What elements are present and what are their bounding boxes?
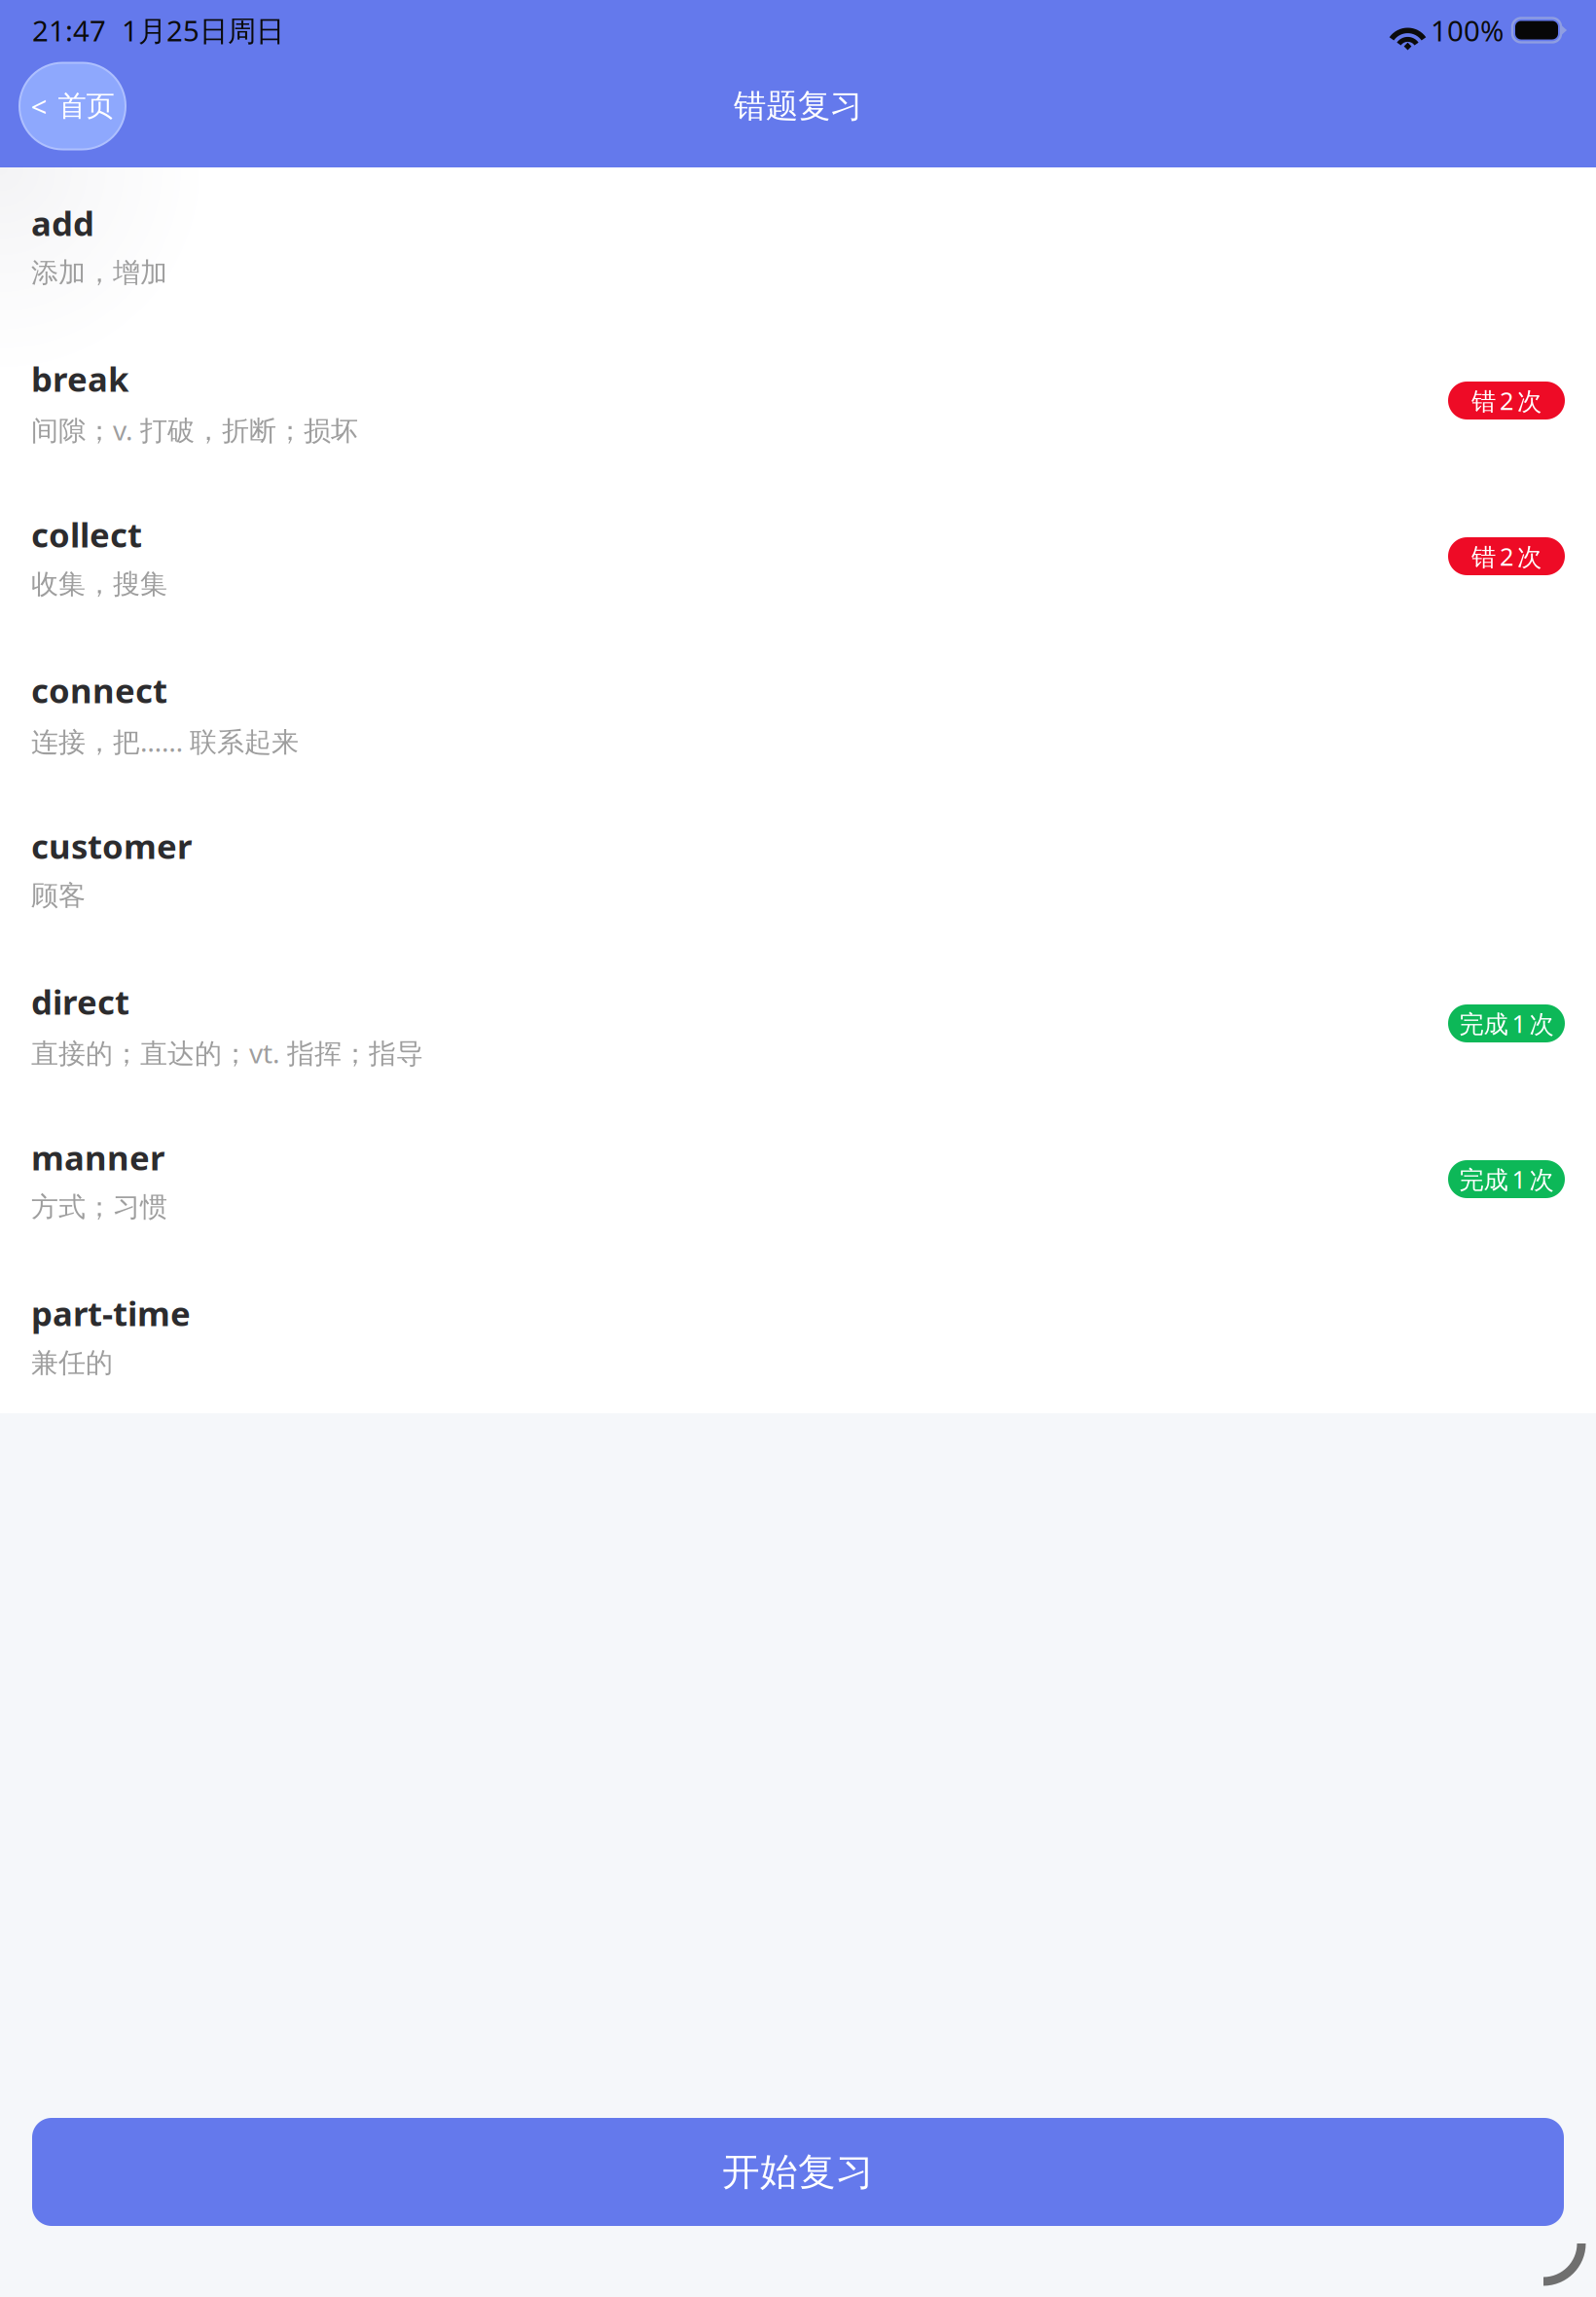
button[interactable]: customer: [0, 790, 1596, 946]
staticText: 完成 1 次: [1459, 1007, 1554, 1040]
staticText: 间隙；v. 打破，折断；损坏: [31, 412, 358, 448]
button[interactable]: break: [0, 323, 1596, 479]
staticText: 首页: [58, 89, 114, 124]
staticText: 顾客: [31, 879, 86, 912]
button[interactable]: part-time: [0, 1258, 1596, 1413]
staticText: 开始复习: [722, 2149, 874, 2195]
staticText: <: [31, 87, 47, 125]
staticText: add: [31, 201, 94, 245]
staticText: 连接，把…… 联系起来: [31, 723, 299, 759]
staticText: 100%: [1431, 11, 1504, 49]
staticText: direct: [31, 979, 129, 1024]
staticText: 添加，增加: [31, 256, 167, 289]
staticText: customer: [31, 823, 192, 868]
staticText: 方式；习惯: [31, 1190, 167, 1224]
staticText: 兼任的: [31, 1346, 113, 1380]
button[interactable]: direct: [0, 946, 1596, 1102]
button[interactable]: connect: [0, 635, 1596, 790]
button[interactable]: 开始复习: [32, 2118, 1564, 2226]
button[interactable]: manner: [0, 1102, 1596, 1258]
staticText: break: [31, 356, 128, 401]
staticText: connect: [31, 668, 167, 712]
staticText: 21:47 1月25日周日: [32, 11, 284, 49]
staticText: 错 2 次: [1471, 384, 1542, 417]
button[interactable]: 返回首页: [19, 63, 126, 149]
staticText: 错题复习: [734, 86, 862, 126]
staticText: manner: [31, 1135, 164, 1180]
staticText: 完成 1 次: [1459, 1163, 1554, 1196]
staticText: part-time: [31, 1291, 191, 1335]
staticText: 直接的；直达的；vt. 指挥；指导: [31, 1035, 423, 1071]
staticText: 收集，搜集: [31, 567, 167, 601]
staticText: collect: [31, 512, 142, 557]
staticText: 错 2 次: [1471, 540, 1542, 573]
button[interactable]: add: [0, 167, 1596, 323]
button[interactable]: collect: [0, 479, 1596, 635]
